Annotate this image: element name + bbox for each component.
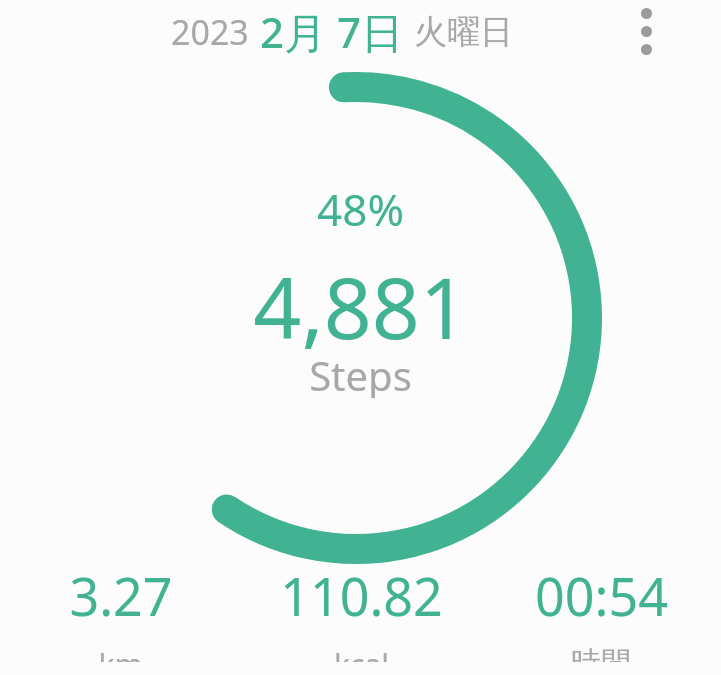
button[interactable]: 2023 — [171, 3, 513, 60]
staticText: kcal — [334, 644, 389, 662]
staticText: 3.27 — [69, 560, 173, 631]
staticText: 00:54 — [535, 560, 668, 631]
staticText: 火曜日 — [414, 11, 513, 53]
staticText: 2月 7日 — [260, 3, 403, 60]
button[interactable]: 00:54 — [481, 552, 721, 662]
button[interactable]: 3.27 — [0, 552, 241, 662]
staticText: km — [98, 644, 143, 662]
staticText: 2023 — [171, 9, 249, 55]
staticText: 時間 — [571, 644, 631, 662]
staticText: 48% — [317, 179, 404, 239]
staticText: Steps — [309, 348, 412, 398]
button[interactable]: 110.82 — [241, 552, 481, 662]
staticText: 4,881 — [253, 249, 468, 349]
staticText: 110.82 — [280, 560, 443, 631]
button[interactable]: More options — [614, 0, 678, 62]
